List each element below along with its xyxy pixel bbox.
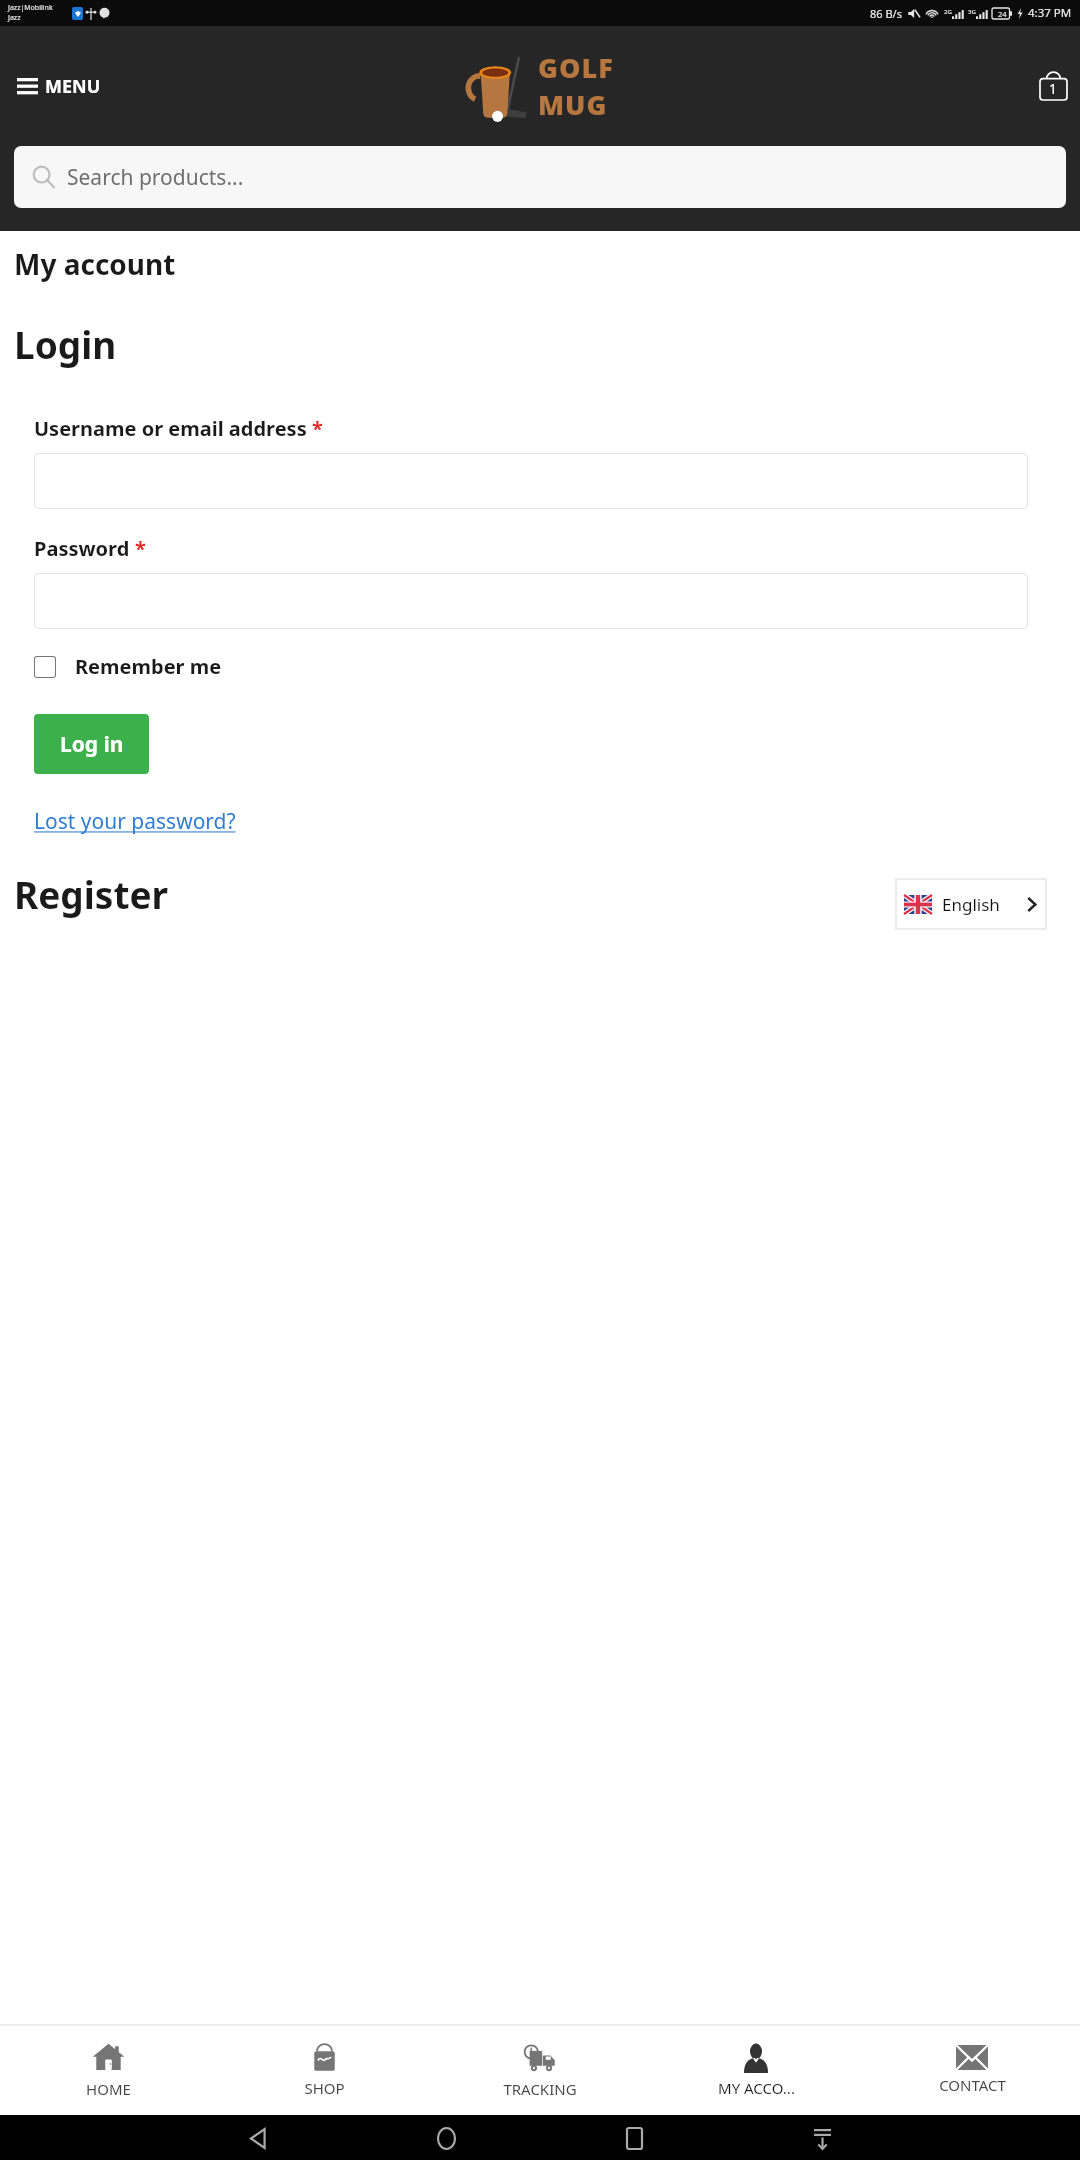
staticText: Jazz <box>8 13 21 23</box>
staticText: * <box>135 535 146 562</box>
staticText: 86 B/s <box>870 6 902 21</box>
button[interactable]: CONTACT <box>864 2025 1080 2115</box>
button[interactable]: Remember me <box>34 653 222 680</box>
button[interactable]: Lost your password? <box>34 807 236 836</box>
button[interactable] <box>34 453 1028 509</box>
button[interactable]: MY ACCO... <box>648 2025 864 2115</box>
staticText: TRACKING <box>503 2079 577 2099</box>
button[interactable]: English <box>896 879 1046 929</box>
staticText: Jazz|Mobilink <box>8 3 53 13</box>
button[interactable] <box>34 573 1028 629</box>
button[interactable]: Recent apps <box>614 2118 654 2158</box>
button[interactable]: MENU <box>13 70 105 103</box>
staticText: My account <box>14 245 176 283</box>
staticText: Login <box>14 319 117 369</box>
staticText: Remember me <box>75 653 222 680</box>
staticText: Password <box>34 535 130 562</box>
staticText: SHOP <box>304 2078 345 2098</box>
staticText: 1 <box>1049 79 1058 98</box>
staticText: * <box>312 415 323 442</box>
staticText: English <box>942 893 1000 916</box>
staticText: 4:37 PM <box>1028 5 1072 21</box>
button[interactable]: Search products... <box>14 146 1066 208</box>
staticText: Register <box>14 869 169 919</box>
staticText: 2G <box>944 8 952 16</box>
staticText: MY ACCO... <box>718 2078 795 2098</box>
button[interactable]: Hide navigation bar <box>802 2118 842 2158</box>
staticText: GOLF <box>538 49 614 86</box>
button[interactable]: Back <box>238 2118 278 2158</box>
staticText: MUG <box>538 86 608 123</box>
button[interactable]: SHOP <box>216 2025 432 2115</box>
button[interactable]: HOME <box>0 2025 216 2115</box>
staticText: CONTACT <box>939 2075 1006 2095</box>
button[interactable]: Log in <box>34 714 149 774</box>
button[interactable]: Home <box>426 2118 466 2158</box>
staticText: Search products... <box>67 163 244 192</box>
staticText: Log in <box>60 730 124 759</box>
staticText: MENU <box>45 74 101 99</box>
staticText: 3G <box>968 8 976 16</box>
button[interactable]: TRACKING <box>432 2025 648 2115</box>
staticText: Username or email address <box>34 415 307 442</box>
button[interactable]: Cart, 1 item <box>1040 72 1067 100</box>
staticText: 24 <box>998 9 1007 19</box>
staticText: HOME <box>86 2079 131 2099</box>
